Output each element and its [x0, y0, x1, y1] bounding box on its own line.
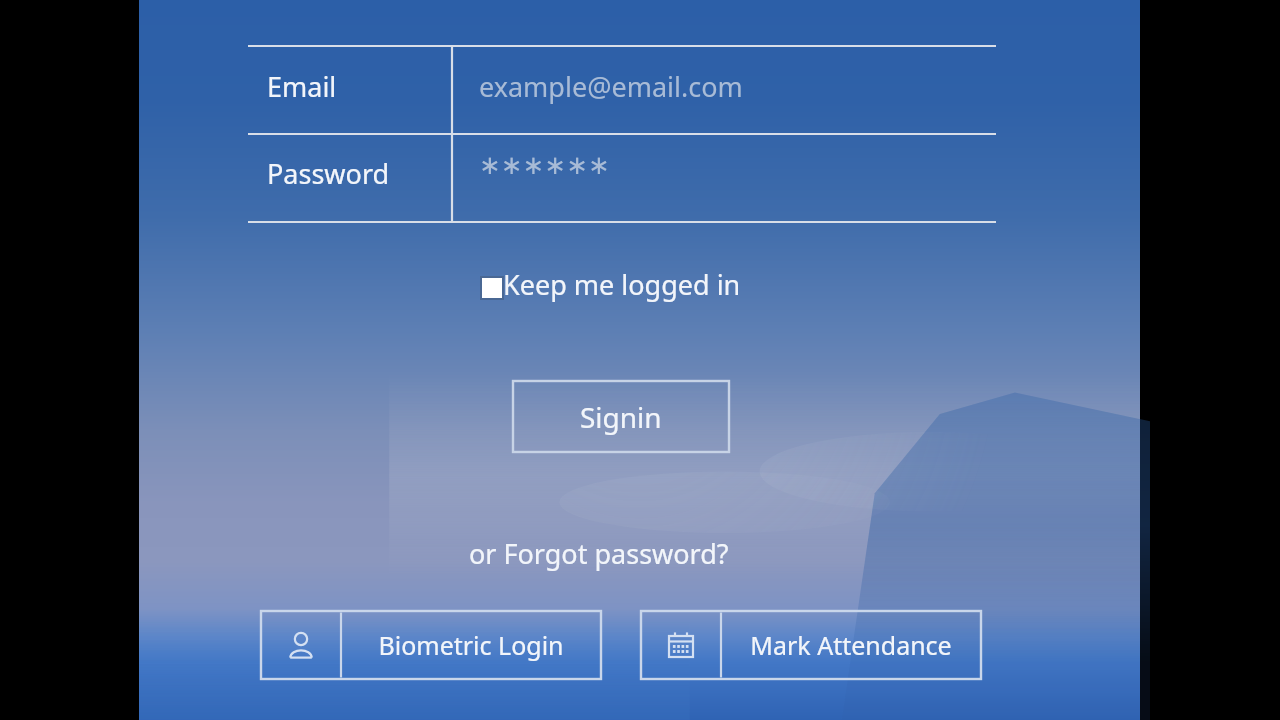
button[interactable]: ∗∗∗∗∗∗	[479, 150, 610, 180]
other: Biometric Login	[286, 630, 316, 660]
staticText: Mark Attendance	[750, 628, 952, 662]
other: Mark Attendance	[666, 630, 696, 660]
staticText: Biometric Login	[378, 628, 564, 662]
staticText: Signin	[580, 398, 662, 436]
button[interactable]: Signin	[513, 381, 729, 452]
button[interactable]: Keep me logged in	[481, 266, 741, 303]
button[interactable]: example@email.com	[479, 68, 743, 105]
staticText: ∗∗∗∗∗∗	[479, 150, 610, 180]
button[interactable]: Password	[267, 155, 390, 192]
staticText: Keep me logged in	[503, 266, 741, 303]
button[interactable]: Email	[267, 68, 337, 105]
staticText: Email	[267, 68, 337, 105]
button[interactable]: Mark Attendance	[641, 611, 981, 679]
staticText: or Forgot password?	[469, 535, 729, 572]
button[interactable]: or Forgot password?	[469, 535, 729, 572]
staticText: Password	[267, 155, 390, 192]
button[interactable]: Biometric Login	[261, 611, 601, 679]
staticText: example@email.com	[479, 68, 743, 105]
